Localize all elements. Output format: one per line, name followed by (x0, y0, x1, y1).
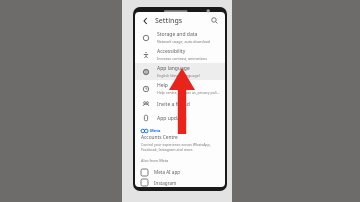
staticText: Network usage, auto-download (157, 39, 211, 44)
staticText: Help centre, contact us, privacy policy (157, 90, 220, 95)
button[interactable]: Meta AI app (135, 166, 225, 178)
staticText: Control your experience across WhatsApp,… (141, 142, 211, 152)
staticText: App updates (157, 115, 187, 122)
button[interactable]: App updates (135, 111, 225, 125)
staticText: Meta AI app (154, 169, 181, 175)
button[interactable]: App language (135, 63, 225, 80)
button[interactable]: Invite a friend (135, 97, 225, 111)
staticText: Also from Meta (141, 158, 169, 163)
staticText: App language (157, 65, 190, 72)
staticText: Accessibility (157, 48, 186, 55)
staticText: Accounts Centre (141, 134, 178, 141)
button[interactable]: Help (135, 80, 225, 97)
staticText: Help (157, 82, 168, 89)
button[interactable]: Accessibility (135, 46, 225, 63)
staticText: Invite a friend (157, 101, 190, 108)
button[interactable]: Storage and data (135, 29, 225, 46)
staticText: Meta (150, 128, 161, 133)
staticText: English (device language) (157, 73, 200, 78)
staticText: Settings (155, 16, 183, 26)
button[interactable]: Back (140, 15, 151, 26)
button[interactable]: Meta (135, 125, 225, 152)
staticText: Increase contrast, animations (157, 56, 207, 61)
button[interactable]: Instagram (135, 178, 225, 187)
staticText: Storage and data (157, 31, 198, 38)
button[interactable]: Search (209, 15, 220, 26)
staticText: Instagram (154, 180, 177, 186)
